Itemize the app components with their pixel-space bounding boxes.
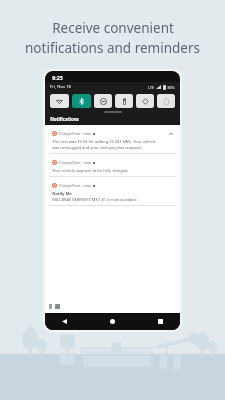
staticText: Notifications (50, 116, 79, 122)
staticText: 85% (167, 85, 175, 90)
staticText: ChargePoint · now (59, 160, 91, 165)
button[interactable]: Flashlight (115, 94, 133, 108)
staticText: 9:25 (52, 74, 63, 81)
button[interactable]: Back (58, 315, 71, 328)
staticText: Receive convenient (52, 19, 174, 37)
button[interactable]: Wi-Fi (50, 94, 69, 108)
staticText: Your vehicle appears to be fully charged… (52, 168, 129, 173)
button[interactable]: Do Not Disturb (94, 94, 112, 108)
button[interactable]: ChargePoint · now (49, 157, 176, 176)
button[interactable]: Auto rotate (136, 94, 154, 108)
staticText: ChargePoint · now (59, 183, 91, 188)
staticText: was unplugged and your charging has stop… (52, 145, 142, 150)
staticText: LTE (148, 85, 154, 90)
staticText: notifications and reminders (25, 39, 200, 57)
button[interactable]: ChargePoint · now (49, 180, 176, 205)
staticText: MILLBRAE FARMER'S MKT #1 is now availabl… (52, 197, 138, 202)
staticText: Notify Me (52, 191, 72, 196)
button[interactable]: Bluetooth (72, 94, 91, 108)
button[interactable]: Recent apps (154, 315, 167, 328)
staticText: Fri, Nov 18 (50, 84, 71, 90)
staticText: ChargePoint · now (59, 131, 91, 136)
button[interactable]: Home (106, 315, 119, 328)
button[interactable]: ChargePoint · now (49, 128, 176, 153)
button[interactable]: Battery Saver (157, 94, 175, 108)
staticText: The cost was $3.04 for adding 25.341 kWh… (52, 139, 156, 144)
